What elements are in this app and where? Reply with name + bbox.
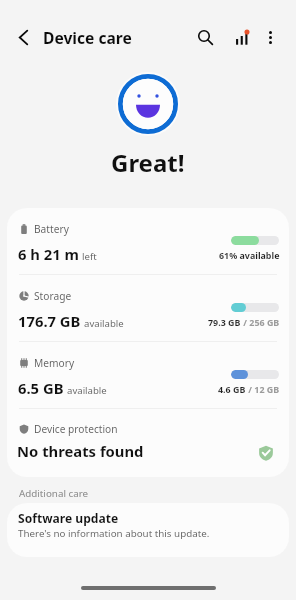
- button[interactable]: Search: [188, 20, 222, 54]
- staticText: 176.7 GB: [18, 311, 81, 331]
- staticText: available: [84, 317, 124, 330]
- staticText: Memory: [34, 356, 75, 370]
- staticText: 79.3 GB: [208, 316, 241, 328]
- staticText: available: [67, 384, 107, 397]
- staticText: 6 h 21 m: [18, 244, 79, 264]
- staticText: Device protection: [34, 422, 118, 436]
- staticText: Additional care: [19, 487, 89, 500]
- staticText: There's no information about this update…: [18, 527, 210, 540]
- staticText: Software update: [18, 510, 119, 526]
- staticText: left: [82, 250, 97, 263]
- button[interactable]: More options: [253, 20, 287, 54]
- button[interactable]: Memory: [7, 342, 289, 408]
- staticText: Device care: [43, 27, 132, 48]
- staticText: Storage: [34, 289, 72, 303]
- staticText: / 12 GB: [246, 383, 280, 395]
- staticText: / 256 GB: [241, 316, 280, 328]
- staticText: 61% available: [219, 249, 280, 261]
- button[interactable]: Battery: [7, 208, 289, 274]
- staticText: 4.6 GB: [218, 383, 246, 395]
- staticText: No threats found: [17, 441, 144, 461]
- button[interactable]: Storage: [7, 275, 289, 341]
- staticText: 6.5 GB: [18, 378, 64, 398]
- button[interactable]: Navigate up: [18, 15, 29, 59]
- button[interactable]: Device protection: [7, 409, 289, 477]
- staticText: Great!: [111, 146, 185, 179]
- button[interactable]: Software update: [7, 503, 289, 557]
- button[interactable]: Usage statistics: [225, 20, 259, 54]
- staticText: Battery: [34, 222, 69, 236]
